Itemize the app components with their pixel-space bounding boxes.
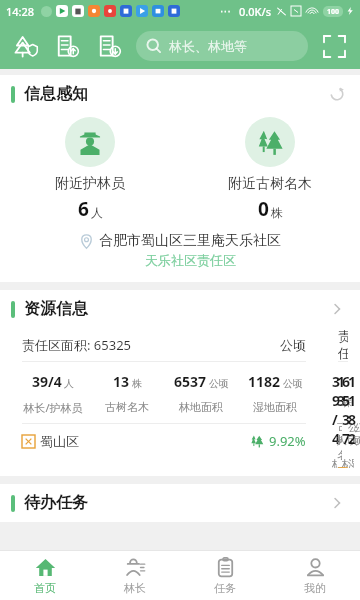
button[interactable]: 林长、林地等 xyxy=(136,31,308,61)
button[interactable]: 上传 xyxy=(54,32,82,60)
button[interactable]: 下载 xyxy=(96,32,124,60)
staticText: 合肥市蜀山区三里庵天乐社区 xyxy=(99,232,281,250)
staticText: 附近古树名木 xyxy=(228,175,312,193)
button[interactable]: 责任区面积: 65325 xyxy=(326,328,360,468)
staticText: 公顷 xyxy=(209,377,229,390)
staticText: 首页 xyxy=(34,581,56,595)
staticText: 资源信息 xyxy=(24,299,88,319)
staticText: 林地面积 xyxy=(179,400,223,414)
staticText: 古树名木 xyxy=(337,419,342,468)
staticText: 人 xyxy=(64,377,74,390)
staticText: 信息感知 xyxy=(24,84,88,104)
button[interactable]: 附近护林员 xyxy=(0,117,180,222)
staticText: 湿地面积 xyxy=(348,457,354,468)
staticText: 6537 xyxy=(174,372,207,391)
button[interactable]: 护林 xyxy=(12,32,40,60)
button[interactable]: 更多 xyxy=(325,297,349,321)
staticText: 14:28 xyxy=(6,4,35,19)
staticText: 任务 xyxy=(214,581,236,595)
staticText: 蜀山区 xyxy=(40,433,79,449)
staticText: 6537 xyxy=(342,372,348,448)
staticText: 附近护林员 xyxy=(55,175,125,193)
staticText: 责任区面积: 65325 xyxy=(338,328,348,361)
button[interactable]: 首页 xyxy=(0,551,90,600)
staticText: 13 xyxy=(113,372,130,391)
staticText: 9.92% xyxy=(269,432,306,450)
staticText: 湿地面积 xyxy=(253,400,297,414)
staticText: 0 xyxy=(258,196,269,222)
staticText: 1182 xyxy=(348,372,354,448)
staticText: 林长/护林员 xyxy=(23,400,83,415)
staticText: 公顷 xyxy=(280,337,306,353)
staticText: 我的 xyxy=(304,581,326,595)
staticText: 6 xyxy=(78,196,89,222)
button[interactable]: 刷新 xyxy=(325,82,349,106)
staticText: 待办任务 xyxy=(24,493,88,513)
staticText: 林长/护林员 xyxy=(332,457,337,468)
staticText: 39/4 xyxy=(332,372,337,448)
staticText: 0.0K/s xyxy=(239,4,272,19)
staticText: 株 xyxy=(132,377,142,390)
staticText: 人 xyxy=(91,205,103,220)
button[interactable]: 任务 xyxy=(180,551,270,600)
staticText: ⋯ xyxy=(220,5,231,18)
button[interactable]: 合肥市蜀山区三里庵天乐社区 xyxy=(0,232,360,268)
staticText: 39/4 xyxy=(32,372,62,391)
staticText: 林长 xyxy=(124,581,146,595)
button[interactable]: 扫一扫 xyxy=(320,32,348,60)
staticText: 古树名木 xyxy=(105,400,149,414)
staticText: 公顷 xyxy=(283,377,303,390)
button[interactable]: 附近古树名木 xyxy=(180,117,360,222)
staticText: 林地面积 xyxy=(342,457,348,468)
button[interactable]: 更多 xyxy=(325,491,349,515)
staticText: 林长、林地等 xyxy=(169,38,247,54)
button[interactable]: 责任区面积: 65325 xyxy=(10,328,318,458)
staticText: 13 xyxy=(337,372,342,410)
staticText: 株 xyxy=(271,205,283,220)
staticText: 天乐社区责任区 xyxy=(145,252,236,268)
staticText: 1182 xyxy=(248,372,281,391)
button[interactable]: 我的 xyxy=(270,551,360,600)
staticText: 责任区面积: 65325 xyxy=(22,336,132,354)
staticText: 100 xyxy=(327,7,340,17)
button[interactable]: 林长 xyxy=(90,551,180,600)
